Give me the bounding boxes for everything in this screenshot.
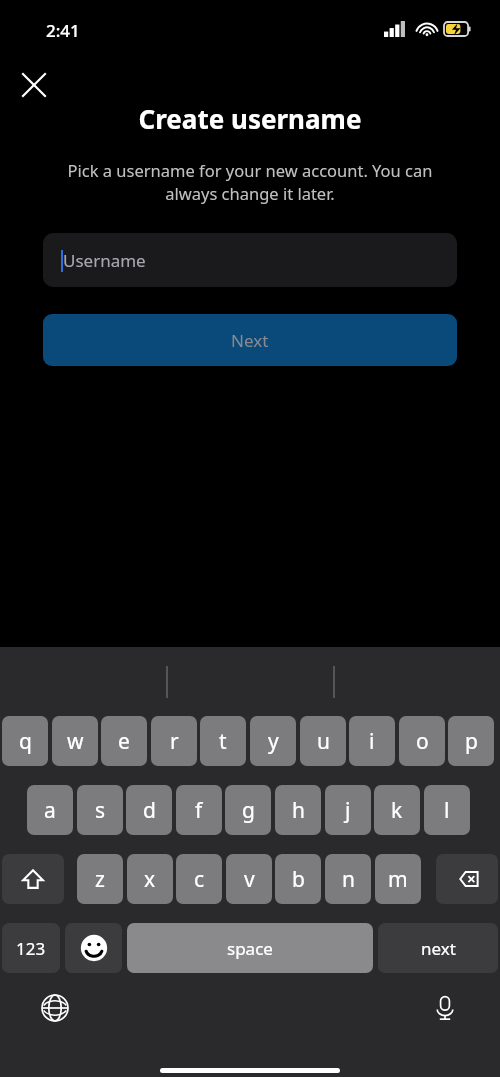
button[interactable]: Numbers bbox=[2, 923, 60, 973]
button[interactable]: h bbox=[275, 785, 321, 835]
button[interactable]: j bbox=[325, 785, 371, 835]
staticText: p bbox=[465, 727, 478, 756]
button[interactable]: Next bbox=[43, 314, 457, 366]
staticText: space bbox=[227, 937, 273, 960]
button[interactable]: d bbox=[126, 785, 172, 835]
staticText: Create username bbox=[0, 101, 500, 136]
button[interactable]: Close bbox=[14, 65, 54, 105]
button[interactable]: b bbox=[275, 854, 321, 904]
staticText: e bbox=[118, 727, 130, 756]
button[interactable]: Emoji bbox=[65, 923, 122, 973]
button[interactable]: g bbox=[225, 785, 271, 835]
staticText: n bbox=[342, 865, 355, 894]
staticText: i bbox=[369, 727, 375, 756]
button[interactable]: Username bbox=[43, 233, 457, 287]
staticText: o bbox=[416, 727, 429, 756]
button[interactable]: u bbox=[300, 716, 346, 766]
button[interactable]: f bbox=[176, 785, 222, 835]
staticText: d bbox=[143, 796, 156, 825]
button[interactable]: k bbox=[374, 785, 420, 835]
button[interactable]: o bbox=[399, 716, 445, 766]
staticText: a bbox=[44, 796, 56, 825]
button[interactable]: s bbox=[77, 785, 123, 835]
staticText: c bbox=[194, 865, 205, 894]
staticText: q bbox=[19, 727, 32, 756]
staticText: f bbox=[195, 796, 203, 825]
button[interactable]: v bbox=[226, 854, 272, 904]
button[interactable]: Shift bbox=[2, 854, 64, 904]
button[interactable]: next bbox=[378, 923, 498, 973]
button[interactable]: m bbox=[375, 854, 421, 904]
staticText: 123 bbox=[16, 937, 46, 960]
button[interactable]: p bbox=[448, 716, 494, 766]
button[interactable]: Backspace bbox=[436, 854, 498, 904]
staticText: h bbox=[292, 796, 305, 825]
staticText: z bbox=[95, 865, 105, 894]
staticText: u bbox=[317, 727, 330, 756]
button[interactable]: y bbox=[250, 716, 296, 766]
button[interactable]: l bbox=[424, 785, 470, 835]
staticText: t bbox=[219, 727, 227, 756]
staticText: Pick a username for your new account. Yo… bbox=[40, 159, 460, 205]
button[interactable]: Change keyboard bbox=[34, 987, 76, 1029]
staticText: w bbox=[67, 727, 84, 756]
button[interactable]: r bbox=[151, 716, 197, 766]
button[interactable]: space bbox=[127, 923, 373, 973]
button[interactable]: n bbox=[325, 854, 371, 904]
staticText: v bbox=[244, 865, 255, 894]
staticText: next bbox=[421, 937, 456, 960]
staticText: Username bbox=[63, 249, 146, 272]
staticText: l bbox=[444, 796, 450, 825]
staticText: s bbox=[95, 796, 106, 825]
staticText: y bbox=[268, 727, 279, 756]
button[interactable]: a bbox=[27, 785, 73, 835]
button[interactable]: t bbox=[200, 716, 246, 766]
button[interactable]: w bbox=[52, 716, 98, 766]
staticText: 2:41 bbox=[46, 19, 80, 42]
staticText: x bbox=[144, 865, 156, 894]
button[interactable]: e bbox=[101, 716, 147, 766]
button[interactable]: z bbox=[77, 854, 123, 904]
staticText: m bbox=[388, 865, 408, 894]
staticText: g bbox=[242, 796, 255, 825]
button[interactable]: x bbox=[127, 854, 173, 904]
button[interactable]: i bbox=[349, 716, 395, 766]
button[interactable]: c bbox=[176, 854, 222, 904]
staticText: k bbox=[391, 796, 403, 825]
staticText: b bbox=[292, 865, 305, 894]
staticText: j bbox=[345, 796, 351, 825]
button[interactable]: q bbox=[2, 716, 48, 766]
staticText: Next bbox=[231, 329, 269, 352]
button[interactable]: Voice input bbox=[424, 987, 466, 1029]
staticText: r bbox=[170, 727, 179, 756]
